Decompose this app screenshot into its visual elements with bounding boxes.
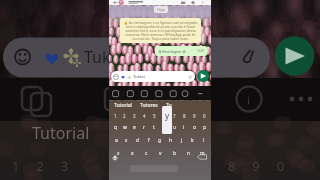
staticText: 12:58 xyxy=(197,49,204,53)
staticText: ♻ Reciclagem ♻ xyxy=(158,49,186,54)
staticText: 6 xyxy=(163,113,166,119)
staticText: 4 xyxy=(143,113,146,119)
staticText: o xyxy=(193,124,196,131)
button[interactable]: Tuktei xyxy=(111,71,195,82)
staticText: 2 xyxy=(123,113,126,119)
staticText: p xyxy=(203,124,206,131)
staticText: i xyxy=(247,92,250,107)
staticText: d xyxy=(136,137,139,144)
staticText: k xyxy=(191,137,194,144)
staticText: 1 xyxy=(114,113,117,119)
staticText: c xyxy=(145,150,148,157)
staticText: 9 xyxy=(193,113,196,119)
staticText: GIF xyxy=(111,93,123,103)
staticText: w xyxy=(123,124,127,131)
staticText: l xyxy=(203,137,205,144)
staticText: Tutorial xyxy=(32,122,90,144)
staticText: 1 2 3 xyxy=(12,157,69,175)
staticText: u xyxy=(173,124,176,131)
staticText: 🔒 As mensagens e as ligacoes sao protegi… xyxy=(123,20,198,41)
staticText: t xyxy=(153,124,155,131)
staticText: Tutores xyxy=(140,102,158,108)
staticText: y xyxy=(165,110,170,121)
staticText: h xyxy=(169,137,172,144)
staticText: i xyxy=(183,124,185,131)
staticText: 7 xyxy=(173,113,176,119)
staticText: Tutorial xyxy=(114,102,132,108)
staticText: v xyxy=(159,150,162,157)
staticText: b xyxy=(173,150,176,157)
staticText: g xyxy=(158,137,161,144)
staticText: j xyxy=(181,137,183,144)
staticText: Hoje xyxy=(157,7,165,12)
staticText: s xyxy=(125,137,128,144)
staticText: e xyxy=(133,124,136,131)
staticText: Tuktei xyxy=(133,74,145,80)
button[interactable]: Send xyxy=(197,70,209,82)
staticText: r xyxy=(143,124,145,131)
staticText: 8 xyxy=(183,113,186,119)
staticText: 5 xyxy=(153,113,156,119)
staticText: 0 xyxy=(203,113,206,119)
staticText: n xyxy=(187,150,190,157)
staticText: f xyxy=(148,137,150,144)
staticText: Tu xyxy=(166,102,172,108)
staticText: m xyxy=(200,150,205,157)
staticText: q xyxy=(114,124,117,131)
staticText: a xyxy=(115,137,118,144)
staticText: Tuk xyxy=(84,46,111,68)
staticText: 3 xyxy=(133,113,136,119)
staticText: z xyxy=(117,150,120,157)
staticText: x xyxy=(131,150,134,157)
staticText: 8 9 0 xyxy=(228,157,285,175)
